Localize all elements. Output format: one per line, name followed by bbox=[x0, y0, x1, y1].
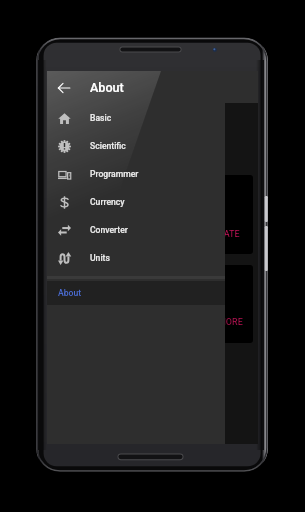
button[interactable]: Programmer bbox=[47, 160, 225, 188]
staticText: Units bbox=[90, 253, 110, 263]
button[interactable]: MORE bbox=[218, 317, 243, 328]
staticText: Converter bbox=[90, 225, 128, 235]
button[interactable]: RATE bbox=[218, 229, 240, 240]
staticText: About bbox=[90, 80, 124, 95]
staticText: Programmer bbox=[90, 169, 139, 179]
staticText: MORE bbox=[218, 317, 243, 328]
staticText: RATE bbox=[218, 229, 240, 240]
button[interactable]: Converter bbox=[47, 216, 225, 244]
button[interactable]: Scientific bbox=[47, 132, 225, 160]
button[interactable]: Navigate up bbox=[47, 71, 80, 104]
button[interactable]: Units bbox=[47, 244, 225, 272]
staticText: About bbox=[58, 288, 82, 298]
button[interactable]: About bbox=[47, 281, 225, 305]
staticText: Scientific bbox=[90, 141, 126, 151]
button[interactable]: Basic bbox=[47, 104, 225, 132]
staticText: Currency bbox=[90, 197, 125, 207]
staticText: Basic bbox=[90, 113, 112, 123]
button[interactable]: Currency bbox=[47, 188, 225, 216]
